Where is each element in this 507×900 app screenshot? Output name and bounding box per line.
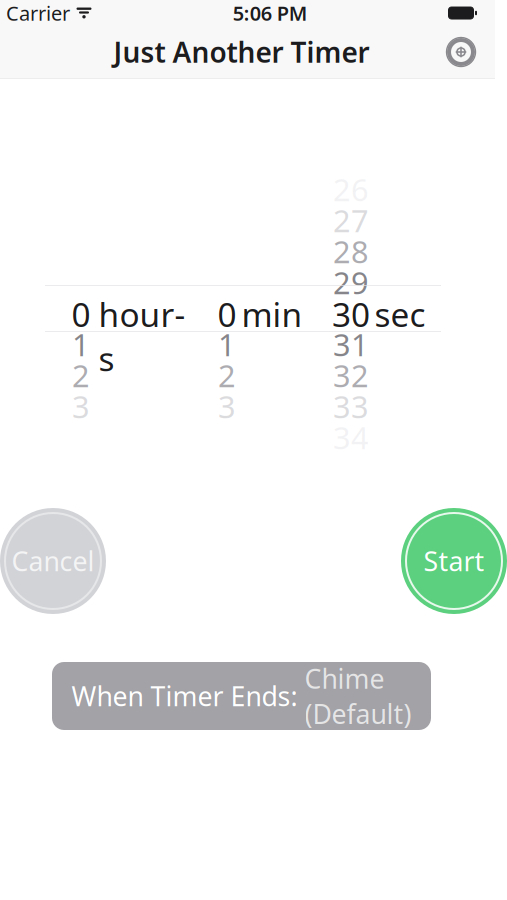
- staticText: Cancel: [11, 543, 94, 579]
- staticText: Just Another Timer: [113, 33, 369, 71]
- staticText: 1: [72, 324, 90, 365]
- staticText: 0: [71, 292, 90, 336]
- staticText: 0: [217, 292, 236, 336]
- staticText: 1: [218, 324, 236, 365]
- staticText: 32: [333, 355, 369, 396]
- button[interactable]: When Timer Ends:: [52, 662, 431, 730]
- staticText: Carrier: [6, 0, 70, 26]
- staticText: hours: [98, 292, 185, 380]
- staticText: 28: [333, 231, 369, 272]
- staticText: 2: [72, 355, 90, 396]
- staticText: sec: [374, 292, 425, 336]
- staticText: 27: [333, 200, 369, 241]
- staticText: 33: [333, 386, 369, 427]
- button[interactable]: Settings: [437, 28, 485, 76]
- staticText: 29: [333, 262, 369, 303]
- staticText: 3: [218, 386, 236, 427]
- staticText: 31: [333, 324, 369, 365]
- staticText: 34: [333, 417, 369, 458]
- staticText: When Timer Ends:: [71, 678, 297, 714]
- staticText: min: [241, 292, 302, 336]
- staticText: 2: [218, 355, 236, 396]
- staticText: 26: [333, 169, 369, 210]
- staticText: 3: [72, 386, 90, 427]
- button[interactable]: Start: [401, 508, 507, 614]
- staticText: 30: [332, 292, 370, 336]
- staticText: Start: [423, 543, 484, 579]
- staticText: 5:06 PM: [233, 0, 308, 26]
- staticText: Chime (Default): [304, 661, 411, 731]
- button[interactable]: Cancel: [0, 508, 106, 614]
